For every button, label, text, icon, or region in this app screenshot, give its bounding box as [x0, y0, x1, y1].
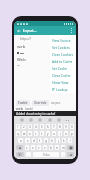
button[interactable]: Toolbar 4	[57, 118, 61, 122]
button[interactable]: i	[58, 131, 62, 136]
button[interactable]: 7	[52, 124, 56, 129]
button[interactable]: More	[66, 118, 70, 122]
staticText: n	[56, 146, 58, 150]
button[interactable]: Set Cookies	[50, 43, 76, 50]
staticText: d	[33, 139, 35, 143]
staticText: z	[26, 146, 28, 150]
button[interactable]: s	[25, 138, 30, 143]
button[interactable]: w	[22, 131, 26, 136]
staticText: IP Lookup	[52, 87, 68, 91]
button[interactable]: IP Lookup	[50, 85, 76, 92]
button[interactable]: Shift	[16, 145, 23, 150]
staticText: Add to Cache	[52, 59, 73, 63]
button[interactable]: e	[28, 131, 32, 136]
button[interactable]: 2	[22, 124, 26, 129]
staticText: p	[71, 132, 73, 136]
button[interactable]: 5	[40, 124, 44, 129]
button[interactable]: Toolbar 0	[20, 118, 24, 122]
button[interactable]: 3	[28, 124, 32, 129]
button[interactable]: Toolbar 2	[38, 118, 42, 122]
staticText: 9	[65, 125, 67, 129]
staticText: t	[41, 132, 43, 136]
button[interactable]: l	[68, 138, 72, 143]
button[interactable]: ,	[26, 152, 31, 157]
button[interactable]: Backspace	[67, 145, 74, 150]
button[interactable]: m	[61, 145, 65, 150]
button[interactable]: Clear Cache	[50, 71, 76, 78]
button[interactable]: n	[55, 145, 59, 150]
button[interactable]: Toolbar 1	[29, 118, 33, 122]
button[interactable]: .	[61, 152, 65, 157]
button[interactable]: 0	[70, 124, 74, 129]
button[interactable]: !#1	[16, 152, 24, 157]
staticText: 0	[71, 125, 73, 129]
button[interactable]: 1	[16, 124, 20, 129]
button[interactable]: o	[64, 131, 68, 136]
staticText: j	[58, 139, 59, 143]
staticText: a	[20, 139, 22, 143]
button[interactable]: Enable	[16, 100, 30, 106]
button[interactable]: g	[44, 138, 48, 143]
button[interactable]: Clear Cookies	[50, 50, 76, 57]
staticText: o	[65, 132, 67, 136]
button[interactable]: a	[18, 138, 23, 143]
button[interactable]: q	[16, 131, 20, 136]
staticText: https://	[20, 37, 31, 41]
button[interactable]: y	[46, 131, 50, 136]
button[interactable]: u	[52, 131, 56, 136]
staticText: Input...	[23, 28, 37, 33]
button[interactable]: More options	[67, 26, 76, 35]
staticText: 2	[23, 125, 25, 129]
button[interactable]: x	[31, 145, 35, 150]
staticText: e	[29, 132, 31, 136]
button[interactable]: j	[56, 138, 60, 143]
staticText: q	[17, 132, 19, 136]
staticText: web	[16, 106, 23, 111]
button[interactable]: Add to Cache	[50, 57, 76, 64]
staticText: 6	[47, 125, 49, 129]
staticText: r	[35, 132, 37, 136]
button[interactable]: Teluu	[33, 152, 59, 157]
button[interactable]: t	[40, 131, 44, 136]
staticText: .	[63, 153, 64, 157]
button[interactable]: Back	[14, 26, 23, 35]
button[interactable]: 6	[46, 124, 50, 129]
button[interactable]: Override	[32, 100, 49, 106]
button[interactable]: View Source	[50, 36, 76, 43]
button[interactable]: Enter	[67, 152, 74, 157]
staticText: s	[27, 139, 29, 143]
button[interactable]: r	[34, 131, 38, 136]
button[interactable]: 8	[58, 124, 62, 129]
staticText: g	[45, 139, 47, 143]
button[interactable]: v	[43, 145, 47, 150]
staticText: Teluu	[43, 153, 50, 157]
button[interactable]: c	[37, 145, 41, 150]
button[interactable]: b	[49, 145, 53, 150]
button[interactable]: k	[62, 138, 66, 143]
button[interactable]: z	[25, 145, 29, 150]
button[interactable]: f	[38, 138, 42, 143]
staticText: y	[47, 132, 49, 136]
button[interactable]: Set Cache	[50, 64, 76, 71]
button[interactable]: 4	[34, 124, 38, 129]
staticText: l	[70, 139, 71, 143]
staticText: v	[44, 146, 46, 150]
button[interactable]: Toolbar 3	[48, 118, 52, 122]
button[interactable]: d	[32, 138, 36, 143]
staticText: 8	[59, 125, 61, 129]
staticText: m	[62, 146, 65, 150]
staticText: x	[32, 146, 34, 150]
staticText: Set Cookies	[52, 45, 70, 49]
button[interactable]: h	[50, 138, 54, 143]
button[interactable]: p	[70, 131, 74, 136]
staticText: 1	[17, 125, 19, 129]
staticText: Show View Object	[52, 80, 74, 84]
staticText: i	[60, 132, 61, 136]
staticText: u	[53, 132, 55, 136]
staticText: k	[63, 139, 65, 143]
button[interactable]: Show View Object	[50, 78, 76, 85]
button[interactable]: 9	[64, 124, 68, 129]
staticText: Added cloud entry to cache!	[16, 112, 56, 116]
button[interactable]: https://	[14, 35, 76, 42]
staticText: 5	[41, 125, 43, 129]
